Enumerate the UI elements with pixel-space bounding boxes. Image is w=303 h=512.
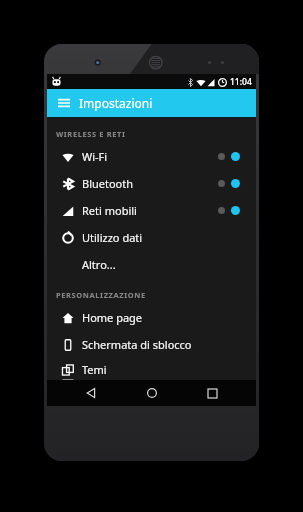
staticText: Temi [82,362,107,377]
button[interactable]: Home [135,380,169,406]
staticText: PERSONALIZZAZIONE [56,290,146,300]
staticText: Utilizzo dati [82,230,143,245]
button[interactable]: Altro... [47,251,256,278]
button[interactable]: Temi [47,358,256,380]
button[interactable]: Wi-Fi [47,143,256,170]
button[interactable]: Back [74,380,108,406]
button[interactable]: Schermata di sblocco [47,331,256,358]
staticText: Wi-Fi [82,149,218,164]
staticText: Bluetooth [82,176,218,191]
staticText: Impostazioni [79,95,153,111]
button[interactable]: Open navigation menu [53,92,75,114]
button[interactable]: Reti mobili [47,197,256,224]
button[interactable]: Home page [47,304,256,331]
staticText: Reti mobili [82,203,218,218]
button[interactable]: Utilizzo dati [47,224,256,251]
staticText: Altro... [82,257,116,272]
staticText: Schermata di sblocco [82,337,192,352]
staticText: Home page [82,310,143,325]
button[interactable]: Bluetooth [47,170,256,197]
staticText: 11:04 [230,76,252,88]
button[interactable]: Recent apps [195,380,229,406]
staticText: WIRELESS E RETI [56,129,126,139]
